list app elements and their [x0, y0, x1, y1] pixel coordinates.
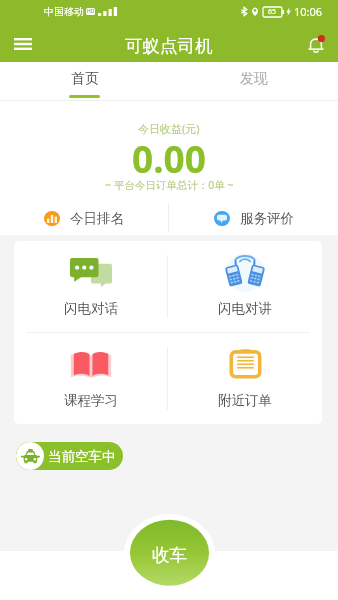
button[interactable]: 服务评价 [169, 204, 338, 233]
staticText: 课程学习 [64, 392, 118, 409]
button[interactable]: 今日排名 [0, 204, 168, 233]
button[interactable]: Menu [5, 26, 41, 62]
staticText: 收车 [152, 544, 187, 566]
staticText: 附近订单 [218, 392, 272, 409]
button[interactable]: 首页 [0, 62, 169, 101]
staticText: 发现 [240, 70, 268, 88]
staticText: 10:06 [294, 4, 323, 19]
staticText: HD [87, 8, 95, 15]
staticText: 首页 [71, 70, 99, 88]
staticText: 闪电对话 [64, 300, 118, 317]
button[interactable]: 发现 [169, 62, 338, 101]
button[interactable]: 收车 [124, 514, 215, 592]
staticText: 中国移动 [44, 5, 84, 18]
button[interactable]: 当前空车中 [16, 442, 123, 470]
staticText: ~ 平台今日订单总计：0单 ~ [105, 178, 234, 192]
staticText: 65 [268, 7, 277, 17]
button[interactable]: 课程学习 [14, 333, 167, 424]
staticText: 今日收益(元) [138, 121, 200, 136]
staticText: 可蚁点司机 [125, 35, 213, 57]
staticText: 今日排名 [70, 210, 124, 227]
button[interactable]: 附近订单 [168, 333, 322, 424]
staticText: 当前空车中 [48, 448, 116, 465]
staticText: 0.00 [132, 133, 206, 183]
button[interactable]: 闪电对话 [14, 241, 167, 332]
staticText: 闪电对讲 [218, 300, 272, 317]
button[interactable]: 闪电对讲 [168, 241, 322, 332]
button[interactable]: Notifications [299, 27, 333, 61]
staticText: 服务评价 [240, 210, 294, 227]
